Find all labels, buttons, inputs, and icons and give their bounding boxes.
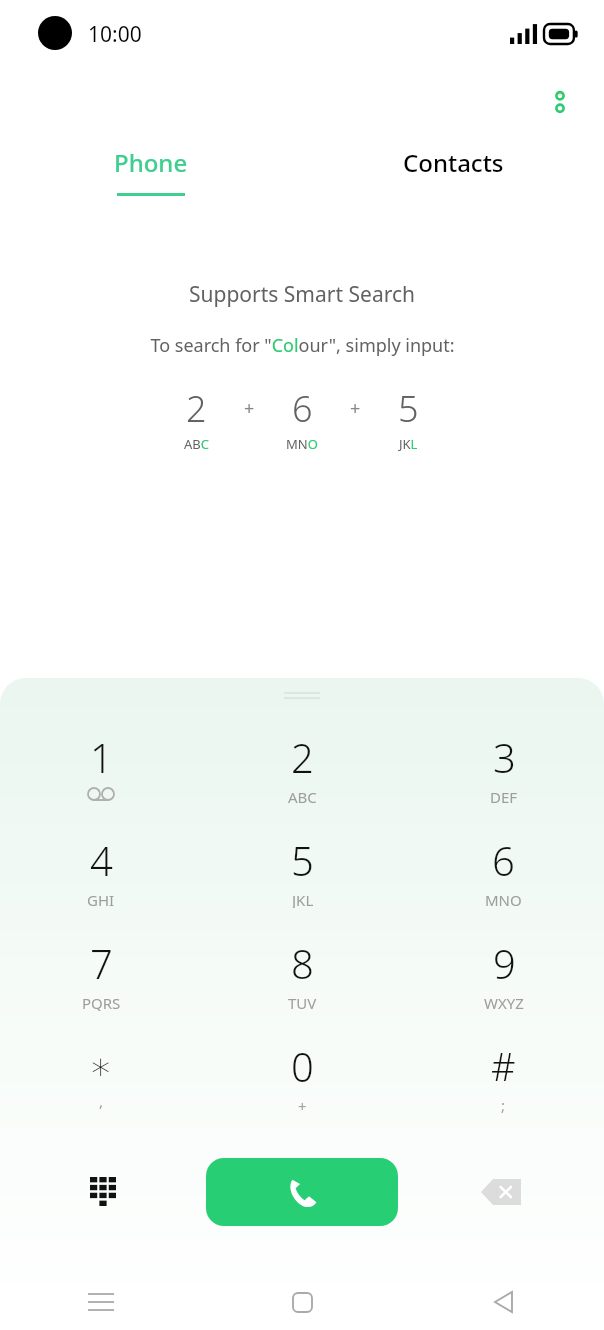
- staticText: ABC: [184, 435, 209, 453]
- staticText: PQRS: [82, 993, 121, 1011]
- button[interactable]: 0: [202, 1025, 403, 1128]
- button[interactable]: 5: [202, 819, 403, 922]
- button[interactable]: Home: [202, 1274, 403, 1330]
- button[interactable]: Phone: [0, 146, 302, 208]
- staticText: +: [298, 1096, 307, 1114]
- button[interactable]: Contacts: [302, 146, 604, 208]
- staticText: 2: [186, 384, 207, 433]
- staticText: JKL: [292, 890, 314, 908]
- button[interactable]: #: [403, 1025, 604, 1128]
- staticText: JKL: [399, 435, 418, 453]
- staticText: TUV: [288, 993, 317, 1011]
- staticText: ,: [99, 1091, 104, 1109]
- staticText: +: [350, 396, 361, 421]
- button[interactable]: ∗: [0, 1025, 202, 1128]
- button[interactable]: 4: [0, 819, 202, 922]
- button[interactable]: More options: [536, 78, 584, 126]
- staticText: GHI: [87, 890, 115, 908]
- button[interactable]: Show keypad: [0, 1144, 206, 1240]
- button[interactable]: 1: [0, 716, 202, 819]
- staticText: To search for "Colour", simply input:: [150, 333, 455, 358]
- button[interactable]: 7: [0, 922, 202, 1025]
- staticText: Supports Smart Search: [189, 280, 415, 309]
- staticText: 7: [90, 936, 113, 990]
- staticText: 1: [90, 730, 113, 784]
- staticText: 2: [291, 730, 314, 784]
- staticText: MNO: [286, 435, 318, 453]
- staticText: 10:00: [88, 20, 142, 49]
- staticText: 8: [291, 936, 314, 990]
- staticText: +: [244, 396, 255, 421]
- staticText: ∗: [89, 1044, 113, 1088]
- button[interactable]: Call: [206, 1158, 398, 1226]
- button[interactable]: 8: [202, 922, 403, 1025]
- staticText: WXYZ: [484, 993, 524, 1011]
- button[interactable]: 3: [403, 716, 604, 819]
- staticText: ABC: [288, 787, 317, 805]
- staticText: #: [491, 1040, 516, 1092]
- staticText: Contacts: [403, 146, 504, 179]
- button[interactable]: 2: [202, 716, 403, 819]
- staticText: 3: [493, 730, 516, 784]
- staticText: 6: [292, 384, 313, 433]
- staticText: 6: [492, 833, 515, 887]
- button[interactable]: 6: [403, 819, 604, 922]
- staticText: ;: [501, 1095, 506, 1113]
- staticText: 0: [291, 1039, 314, 1093]
- staticText: 5: [398, 384, 419, 433]
- button[interactable]: Back: [403, 1274, 604, 1330]
- button[interactable]: Delete: [398, 1144, 604, 1240]
- button[interactable]: Recent apps: [0, 1274, 202, 1330]
- staticText: 9: [493, 936, 516, 990]
- staticText: MNO: [485, 890, 522, 908]
- staticText: 5: [291, 833, 314, 887]
- staticText: 4: [90, 833, 113, 887]
- staticText: DEF: [490, 787, 518, 805]
- button[interactable]: 9: [403, 922, 604, 1025]
- staticText: Phone: [114, 146, 188, 179]
